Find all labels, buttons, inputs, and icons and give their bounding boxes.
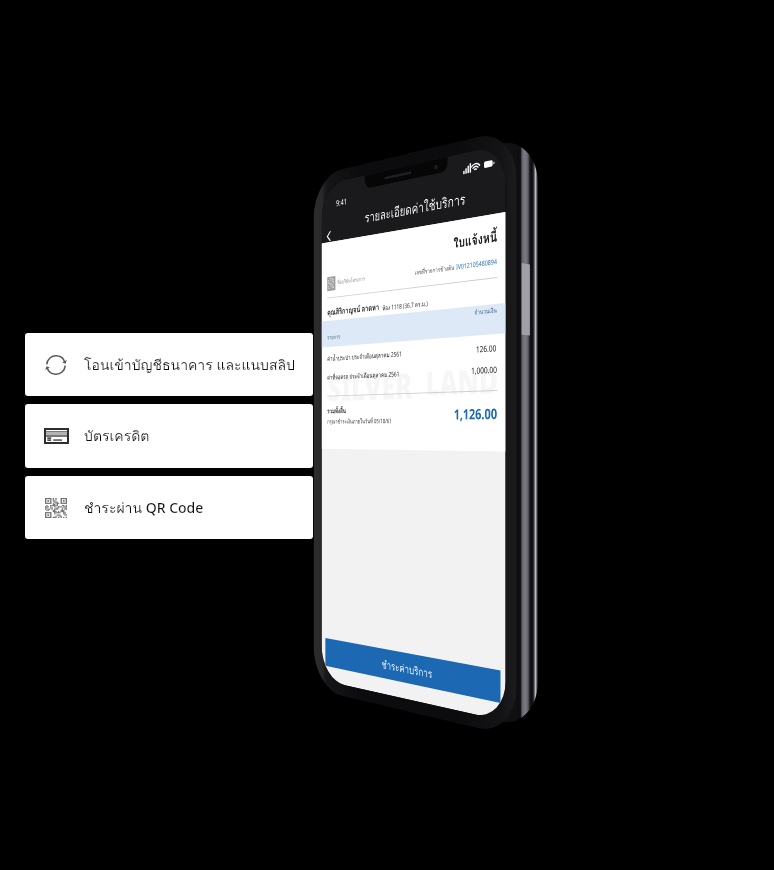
staticText: โอนเข้าบัญชีธนาคาร และแนบสลิป	[84, 354, 296, 376]
staticText: บัตรเครดิต	[84, 425, 150, 447]
staticText: ชำระค่าบริการ	[382, 655, 432, 682]
staticText: IV012105480894	[456, 256, 497, 271]
staticText: 1,000.00	[471, 363, 497, 376]
staticText: ชื่อบริษัทโครงการ	[337, 275, 365, 287]
staticText: ค่าที่จอดรถ ประจำเดือนตุลาคม 2561	[327, 368, 400, 383]
staticText: รายการ	[327, 332, 340, 342]
staticText: SILVER	[328, 361, 413, 411]
staticText: รวมทั้งสิ้น	[327, 405, 346, 416]
staticText: คุณสิริกาญจน์ ลาดหา	[327, 300, 379, 319]
staticText: 126.00	[476, 341, 497, 355]
staticText: 1,126.00	[454, 404, 497, 424]
staticText: ใบแจ้งหนี้	[327, 225, 497, 272]
button[interactable]: โอนเข้าบัญชีธนาคาร และแนบสลิป	[25, 333, 313, 396]
button[interactable]: ชำระผ่าน QR Code	[25, 476, 313, 539]
staticText: จำนวนเงิน	[474, 305, 497, 318]
staticText: กรุณาชำระเงินภายในวันที่ 05/10/61	[327, 416, 392, 426]
button[interactable]: Back	[322, 224, 335, 247]
button[interactable]: ชำระค่าบริการ	[325, 638, 501, 703]
staticText: เลขที่รายการข้างต้น	[415, 262, 456, 278]
staticText: LAND	[426, 356, 499, 406]
staticText: 9:41	[336, 195, 347, 209]
staticText: ชำระผ่าน QR Code	[84, 497, 204, 519]
button[interactable]: บัตรเครดิต	[25, 404, 313, 468]
staticText: ห้อง 1118 (36.7 ตร.ม.)	[382, 299, 428, 313]
staticText: ค่าน้ำประปา ประจำเดือนตุลาคม 2561	[327, 348, 402, 364]
staticText: รายละเอียดค่าใช้บริการ	[365, 187, 466, 228]
